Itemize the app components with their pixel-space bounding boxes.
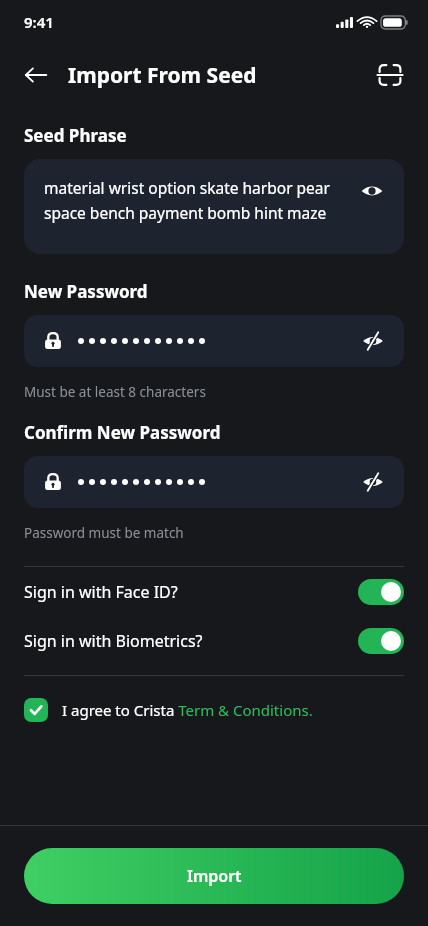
button[interactable]: Scan QR code xyxy=(368,53,412,97)
button[interactable]: Show seed phrase xyxy=(354,173,390,209)
button[interactable]: Back xyxy=(14,53,58,97)
staticText: material wrist option skate harbor pear … xyxy=(44,177,330,224)
staticText: 9:41 xyxy=(24,12,54,32)
staticText: I agree to Crista Term & Conditions. xyxy=(62,700,313,720)
staticText: Confirm New Password xyxy=(24,421,221,444)
button[interactable]: Toggle password visibility xyxy=(356,324,390,358)
button[interactable]: Toggle password visibility xyxy=(356,465,390,499)
staticText: Sign in with Biometrics? xyxy=(24,630,203,652)
staticText: Seed Phrase xyxy=(24,124,127,147)
staticText: New Password xyxy=(24,280,148,303)
staticText: Must be at least 8 characters xyxy=(24,383,206,401)
staticText: Sign in with Face ID? xyxy=(24,581,178,603)
button[interactable]: Toggle password visibility xyxy=(24,456,404,508)
staticText: Import xyxy=(187,865,242,887)
button[interactable]: Import xyxy=(24,848,404,904)
button[interactable]: I agree to Crista Term & Conditions. xyxy=(24,698,404,722)
button[interactable]: Sign in with Biometrics? xyxy=(24,616,404,665)
button[interactable]: material wrist option skate harbor pear … xyxy=(24,159,404,254)
button[interactable]: Sign in with Face ID? xyxy=(24,567,404,616)
staticText: Import From Seed xyxy=(68,61,257,90)
staticText: Password must be match xyxy=(24,524,184,542)
button[interactable]: Toggle password visibility xyxy=(24,315,404,367)
